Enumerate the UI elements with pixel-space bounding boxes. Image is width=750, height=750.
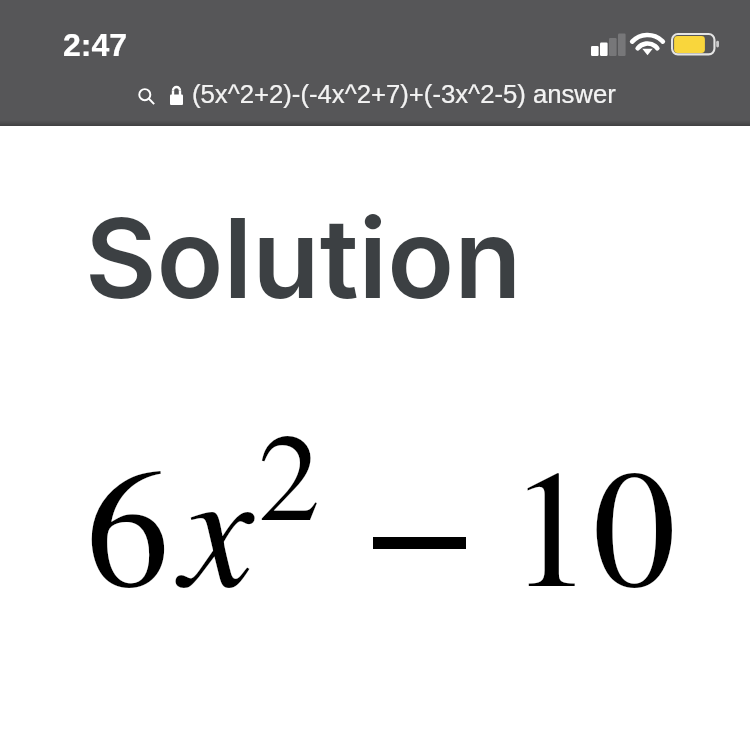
other: Search: [138, 88, 155, 105]
staticText: 2: [258, 389, 321, 555]
button[interactable]: Search: [0, 70, 750, 126]
staticText: 2:47: [63, 27, 128, 63]
staticText: 10: [509, 410, 677, 633]
other: Cellular signal: [591, 33, 625, 56]
staticText: 6: [86, 410, 170, 633]
other: Secure connection: [170, 86, 183, 105]
other: Battery: [671, 33, 721, 56]
other: Wi-Fi: [632, 29, 663, 52]
staticText: x: [180, 407, 255, 631]
staticText: Solution: [85, 191, 522, 324]
staticText: (5x^2+2)-(-4x^2+7)+(-3x^2-5) answer: [192, 80, 616, 109]
